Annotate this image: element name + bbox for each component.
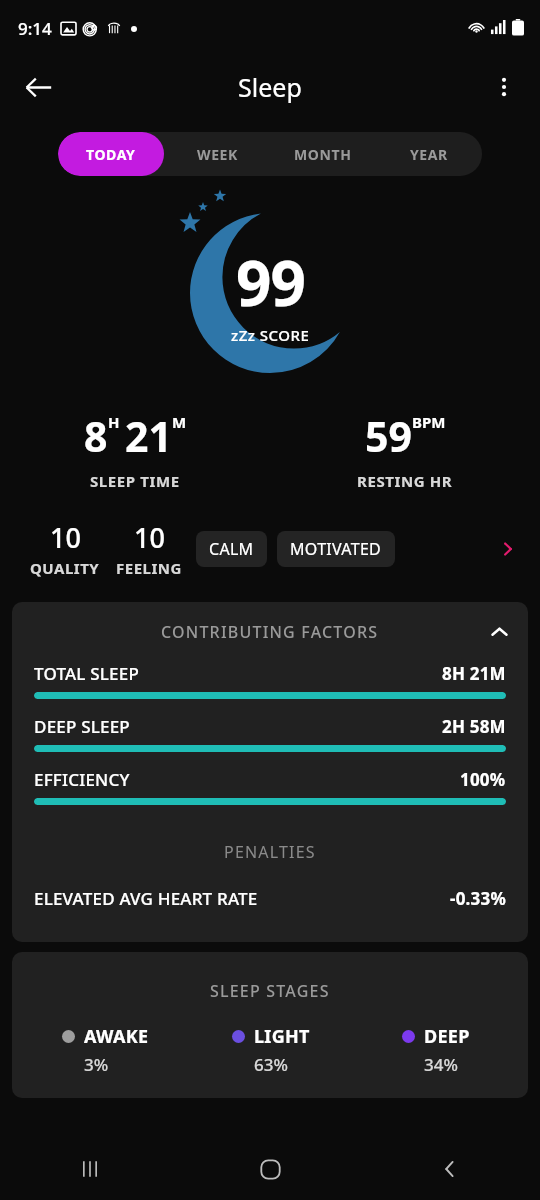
staticText: PENALTIES bbox=[224, 841, 316, 863]
button[interactable]: MONTH bbox=[270, 132, 376, 176]
staticText: 59 bbox=[365, 408, 412, 464]
button[interactable]: CONTRIBUTING FACTORS bbox=[12, 602, 528, 662]
button[interactable]: More details bbox=[490, 531, 526, 567]
button[interactable]: CALM bbox=[196, 531, 267, 567]
staticText: 8 bbox=[84, 408, 108, 464]
staticText: DEEP SLEEP bbox=[34, 715, 130, 738]
staticText: LIGHT bbox=[254, 1024, 310, 1049]
button[interactable]: MOTIVATED bbox=[277, 531, 395, 567]
button[interactable]: Back bbox=[10, 59, 66, 115]
button[interactable]: TODAY bbox=[58, 132, 164, 176]
staticText: 3% bbox=[84, 1053, 109, 1076]
staticText: SLEEP TIME bbox=[90, 471, 180, 491]
staticText: BPM bbox=[412, 412, 446, 432]
staticText: 10 bbox=[134, 519, 165, 556]
staticText: SLEEP STAGES bbox=[210, 980, 330, 1002]
staticText: -0.33% bbox=[450, 887, 506, 910]
staticText: RESTING HR bbox=[357, 471, 453, 491]
staticText: H bbox=[108, 412, 120, 432]
staticText: EFFICIENCY bbox=[34, 768, 130, 791]
staticText: WEEK bbox=[197, 145, 238, 164]
staticText: FEELING bbox=[116, 558, 182, 578]
button[interactable]: Back bbox=[360, 1138, 540, 1200]
staticText: 100% bbox=[460, 768, 506, 791]
staticText: MOTIVATED bbox=[290, 538, 382, 560]
staticText: 10 bbox=[50, 519, 81, 556]
staticText: Sleep bbox=[238, 70, 302, 104]
staticText: 9:14 bbox=[18, 17, 52, 40]
button[interactable]: Home bbox=[180, 1138, 360, 1200]
staticText: 99 bbox=[236, 240, 305, 324]
staticText: 34% bbox=[424, 1053, 458, 1076]
staticText: ELEVATED AVG HEART RATE bbox=[34, 887, 258, 910]
button[interactable]: WEEK bbox=[164, 132, 270, 176]
staticText: 8H 21M bbox=[442, 662, 506, 685]
staticText: M bbox=[172, 412, 187, 432]
staticText: 21 bbox=[125, 408, 172, 464]
staticText: MONTH bbox=[294, 145, 352, 164]
button[interactable]: YEAR bbox=[376, 132, 482, 176]
staticText: 2H 58M bbox=[442, 715, 506, 738]
staticText: TOTAL SLEEP bbox=[34, 662, 139, 685]
staticText: zZz SCORE bbox=[231, 325, 310, 345]
button[interactable]: Recent apps bbox=[0, 1138, 180, 1200]
staticText: YEAR bbox=[410, 145, 448, 164]
staticText: QUALITY bbox=[30, 558, 100, 578]
staticText: CONTRIBUTING FACTORS bbox=[161, 621, 379, 643]
staticText: TODAY bbox=[86, 145, 136, 164]
button[interactable]: More options bbox=[478, 61, 530, 113]
staticText: DEEP bbox=[424, 1024, 470, 1049]
staticText: 63% bbox=[254, 1053, 288, 1076]
staticText: AWAKE bbox=[84, 1024, 149, 1049]
staticText: CALM bbox=[209, 538, 254, 560]
